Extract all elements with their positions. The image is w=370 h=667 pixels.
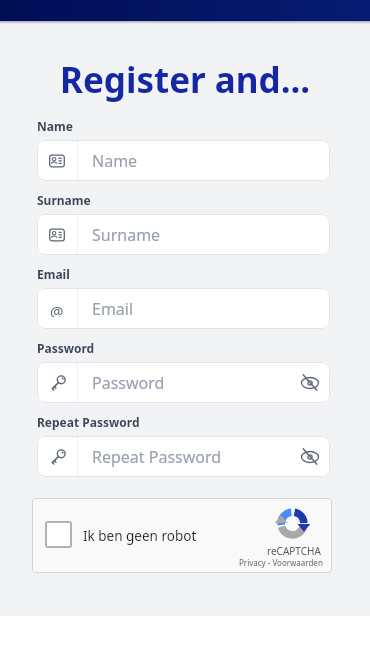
staticText: Email xyxy=(92,298,134,320)
button[interactable] xyxy=(45,521,72,548)
staticText: Password xyxy=(37,340,95,356)
staticText: Repeat Password xyxy=(37,414,140,430)
button[interactable]: Repeat Password xyxy=(37,436,330,477)
button[interactable]: Password xyxy=(37,362,330,403)
button[interactable] xyxy=(295,436,325,477)
staticText: Ik ben geen robot xyxy=(83,527,197,545)
staticText: Name xyxy=(37,118,73,134)
staticText: Surname xyxy=(37,192,91,208)
staticText: Surname xyxy=(92,224,161,246)
staticText: Repeat Password xyxy=(92,446,222,468)
button[interactable]: @ xyxy=(37,288,330,329)
staticText: Email xyxy=(37,266,70,282)
staticText: @ xyxy=(50,301,64,317)
button[interactable]: Name xyxy=(37,140,330,181)
button[interactable] xyxy=(295,362,325,403)
staticText: Password xyxy=(92,372,165,394)
staticText: reCAPTCHA xyxy=(267,544,321,558)
staticText: Name xyxy=(92,150,138,172)
button[interactable]: Surname xyxy=(37,214,330,255)
staticText: Privacy - Voorwaarden xyxy=(239,557,323,568)
staticText: Register and... xyxy=(60,56,311,104)
